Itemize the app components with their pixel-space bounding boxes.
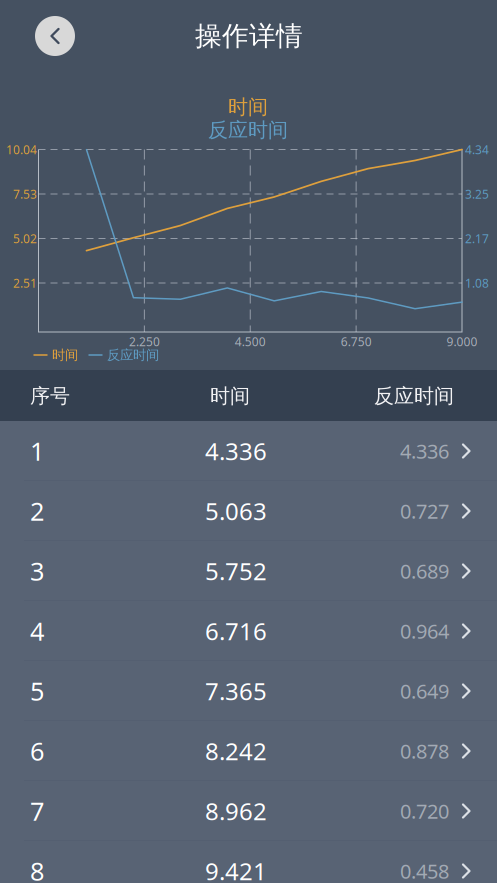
staticText: 0.458: [400, 858, 449, 883]
staticText: 4.500: [235, 333, 266, 349]
button[interactable]: 8: [0, 841, 497, 883]
staticText: 3: [30, 554, 44, 588]
button[interactable]: 5: [0, 661, 497, 721]
staticText: 4.336: [205, 435, 267, 467]
staticText: 8: [30, 854, 44, 883]
button[interactable]: 6: [0, 721, 497, 781]
staticText: 0.689: [400, 558, 449, 584]
staticText: 2: [30, 494, 44, 528]
staticText: 时间: [228, 95, 268, 119]
staticText: 9.421: [205, 855, 267, 883]
button[interactable]: 7: [0, 781, 497, 841]
staticText: 操作详情: [195, 20, 303, 52]
staticText: 7.53: [13, 186, 37, 202]
staticText: 1.08: [465, 275, 489, 291]
staticText: 4.336: [400, 438, 449, 464]
staticText: 2.17: [465, 230, 489, 246]
staticText: 8.962: [205, 795, 267, 827]
staticText: 10.04: [6, 141, 37, 157]
staticText: 反应时间: [208, 118, 288, 142]
staticText: 5.02: [13, 230, 37, 246]
staticText: 0.878: [400, 738, 449, 764]
staticText: 9.000: [446, 333, 477, 349]
staticText: 4.34: [465, 141, 489, 157]
staticText: 7.365: [205, 675, 267, 707]
staticText: 反应时间: [107, 347, 159, 363]
staticText: 6.750: [341, 333, 372, 349]
staticText: 3.25: [465, 186, 489, 202]
staticText: 序号: [30, 384, 70, 408]
staticText: 5.063: [205, 495, 267, 527]
button[interactable]: 3: [0, 541, 497, 601]
staticText: 8.242: [205, 735, 267, 767]
staticText: 0.964: [400, 618, 449, 644]
staticText: 0.727: [400, 498, 449, 524]
staticText: 7: [30, 794, 44, 828]
staticText: 4: [30, 614, 44, 648]
staticText: 5: [30, 674, 44, 708]
staticText: 1: [30, 434, 44, 468]
staticText: 6: [30, 734, 44, 768]
staticText: 0.649: [400, 678, 449, 704]
staticText: 时间: [52, 347, 78, 363]
button[interactable]: 2: [0, 481, 497, 541]
staticText: 时间: [210, 384, 250, 408]
button[interactable]: 1: [0, 421, 497, 481]
staticText: 反应时间: [374, 384, 454, 408]
staticText: 5.752: [205, 555, 267, 587]
staticText: 0.720: [400, 798, 449, 824]
button[interactable]: 4: [0, 601, 497, 661]
staticText: 2.51: [13, 275, 37, 291]
staticText: 2.250: [129, 333, 160, 349]
staticText: 6.716: [205, 615, 267, 647]
button[interactable]: Back: [35, 16, 75, 56]
